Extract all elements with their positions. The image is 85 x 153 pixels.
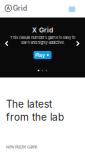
button[interactable]: Home: [0, 1, 31, 15]
button[interactable]: Previous slide: [0, 36, 14, 50]
staticText: from the lab: [6, 111, 64, 123]
button[interactable]: Next slide: [71, 36, 85, 50]
staticText: learn and highly addictive.: [20, 40, 64, 45]
staticText: Grid: [13, 4, 27, 13]
staticText: New Puzzle Game: [6, 145, 37, 149]
staticText: This casual numbers game is easy to: [10, 35, 75, 40]
button[interactable]: New Puzzle Game: [6, 144, 81, 149]
button[interactable]: Play: [33, 51, 51, 59]
staticText: Play: [35, 52, 45, 58]
button[interactable]: Menu: [64, 1, 79, 15]
staticText: The latest: [6, 98, 52, 110]
staticText: X Grid: [32, 26, 53, 34]
